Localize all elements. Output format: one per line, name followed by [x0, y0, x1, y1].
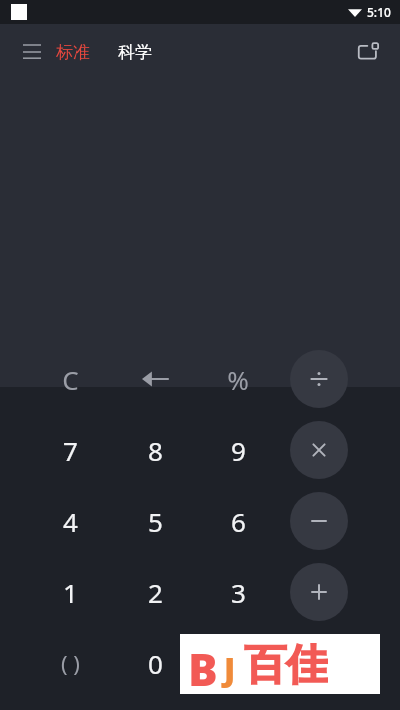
button[interactable]: C [34, 351, 106, 407]
button[interactable]: 0 [119, 635, 191, 691]
staticText: 4 [63, 504, 78, 539]
button[interactable]: 8 [119, 422, 191, 478]
staticText: 百佳 [244, 639, 328, 689]
button[interactable]: ÷ [290, 350, 348, 408]
staticText: 8 [148, 433, 163, 468]
button[interactable]: 3 [202, 564, 274, 620]
button[interactable]: × [290, 421, 348, 479]
staticText: J [224, 647, 236, 691]
button[interactable]: 1 [34, 564, 106, 620]
button[interactable]: Menu [8, 28, 56, 76]
staticText: C [62, 362, 79, 397]
button[interactable]: 2 [119, 564, 191, 620]
staticText: 7 [63, 433, 78, 468]
button[interactable]: − [290, 492, 348, 550]
button[interactable]: 科学 [114, 34, 156, 71]
button[interactable]: % [202, 351, 274, 407]
staticText: % [227, 362, 249, 397]
staticText: ( ) [61, 648, 80, 678]
button[interactable]: 4 [34, 493, 106, 549]
button[interactable]: 标准 [52, 34, 94, 71]
staticText: B [188, 639, 218, 689]
staticText: 5:10 [367, 4, 391, 20]
staticText: 0 [148, 646, 163, 681]
button[interactable]: ( ) [34, 635, 106, 691]
staticText: 5 [148, 504, 163, 539]
button[interactable]: Backspace [123, 351, 187, 407]
staticText: 2 [148, 575, 163, 610]
button[interactable]: 6 [202, 493, 274, 549]
staticText: 3 [231, 575, 246, 610]
staticText: 9 [231, 433, 246, 468]
button[interactable]: 9 [202, 422, 274, 478]
button[interactable]: History [344, 28, 392, 76]
button[interactable]: 5 [119, 493, 191, 549]
staticText: 6 [231, 504, 246, 539]
staticText: 标准 [56, 42, 90, 63]
staticText: 1 [63, 575, 78, 610]
staticText: 科学 [118, 42, 152, 63]
button[interactable]: + [290, 563, 348, 621]
button[interactable]: 7 [34, 422, 106, 478]
